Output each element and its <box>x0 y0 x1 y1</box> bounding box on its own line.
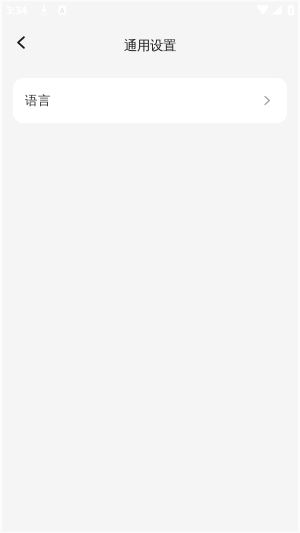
button[interactable]: 语言 <box>13 78 287 123</box>
staticText: 通用设置 <box>124 37 176 54</box>
staticText: 语言 <box>25 93 51 108</box>
button[interactable]: Back <box>4 25 38 59</box>
staticText: 3:34 <box>6 3 27 17</box>
